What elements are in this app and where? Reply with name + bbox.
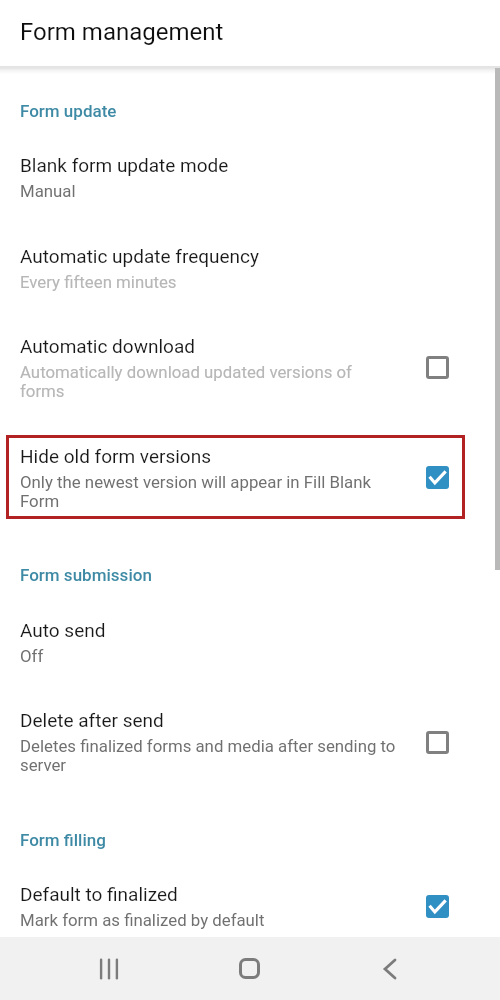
button[interactable]: [0, 600, 500, 687]
button[interactable]: Recent apps: [0, 937, 218, 1000]
button[interactable]: Back: [280, 937, 500, 1000]
staticText: Form management: [20, 18, 224, 46]
staticText: Mark form as finalized by default: [20, 910, 265, 930]
button[interactable]: Default to finalized, checked: [415, 884, 460, 929]
staticText: Form update: [20, 101, 117, 121]
staticText: Form filling: [20, 830, 106, 850]
staticText: Hide old form versions: [20, 445, 211, 467]
staticText: Manual: [20, 181, 76, 201]
staticText: Blank form update mode: [20, 154, 229, 176]
staticText: Automatic update frequency: [20, 245, 260, 267]
button[interactable]: [0, 222, 500, 309]
staticText: Default to finalized: [20, 883, 178, 905]
staticText: Every fifteen minutes: [20, 272, 177, 292]
staticText: Automatically download updated versions …: [20, 362, 398, 402]
staticText: Form submission: [20, 565, 152, 585]
button[interactable]: Automatic download, not checked: [415, 345, 460, 390]
button[interactable]: [0, 312, 500, 422]
staticText: Deletes finalized forms and media after …: [20, 736, 398, 776]
button[interactable]: [0, 866, 500, 937]
staticText: Off: [20, 646, 44, 666]
staticText: Automatic download: [20, 335, 195, 357]
button[interactable]: Form management: [0, 0, 500, 66]
button[interactable]: [0, 135, 500, 222]
button[interactable]: Home: [218, 937, 280, 1000]
staticText: Delete after send: [20, 709, 164, 731]
button[interactable]: Delete after send, not checked: [415, 720, 460, 765]
button[interactable]: [0, 436, 500, 518]
button[interactable]: [0, 690, 500, 790]
staticText: Only the newest version will appear in F…: [20, 472, 398, 512]
button[interactable]: Hide old form versions, checked: [415, 455, 460, 500]
staticText: Auto send: [20, 619, 106, 641]
